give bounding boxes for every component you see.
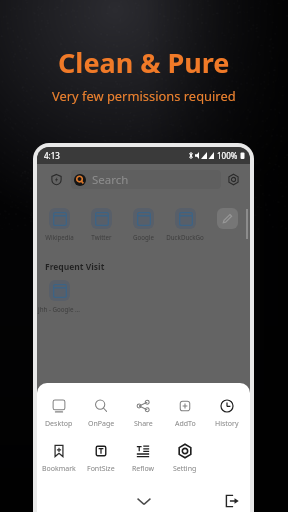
button[interactable]: DuckDuckGo	[164, 208, 206, 241]
button[interactable]: Collapse menu	[130, 487, 157, 512]
button[interactable]: FontSize	[80, 444, 122, 474]
staticText: Desktop	[45, 419, 73, 429]
staticText: Very few permissions required	[52, 87, 236, 105]
button[interactable]: History	[206, 399, 248, 429]
staticText: FontSize	[87, 464, 115, 474]
staticText: 100%	[217, 150, 238, 161]
staticText: Search	[92, 172, 129, 188]
staticText: History	[215, 419, 239, 429]
button[interactable]: Edit shortcuts	[217, 208, 238, 229]
staticText: DuckDuckGo	[166, 233, 204, 241]
staticText: jhh - Google ...	[38, 305, 80, 313]
button[interactable]: OnPage	[80, 399, 122, 429]
staticText: Reflow	[132, 464, 155, 474]
staticText: Share	[134, 419, 153, 429]
button[interactable]: Privacy shield	[49, 172, 63, 186]
staticText: Twitter	[91, 233, 112, 241]
staticText: Clean & Pure	[58, 44, 230, 81]
button[interactable]: Search	[71, 170, 221, 189]
button[interactable]: Desktop	[38, 399, 80, 429]
button[interactable]: Reflow	[122, 444, 164, 474]
button[interactable]: Bookmark	[38, 444, 80, 474]
button[interactable]: Twitter	[80, 208, 122, 241]
staticText: 4:13	[44, 150, 60, 161]
staticText: Wikipedia	[45, 233, 74, 241]
button[interactable]: Google	[122, 208, 164, 241]
staticText: Bookmark	[42, 464, 76, 474]
button[interactable]: Settings	[226, 172, 240, 186]
button[interactable]: Exit	[218, 487, 245, 512]
button[interactable]: Share	[122, 399, 164, 429]
staticText: Setting	[173, 464, 197, 474]
staticText: OnPage	[88, 419, 115, 429]
staticText: AddTo	[175, 419, 196, 429]
button[interactable]: Setting	[164, 444, 206, 474]
staticText: Google	[133, 233, 154, 241]
staticText: Frequent Visit	[45, 261, 105, 273]
button[interactable]: Wikipedia	[38, 208, 80, 241]
button[interactable]: jhh - Google ...	[38, 280, 80, 313]
button[interactable]: AddTo	[164, 399, 206, 429]
